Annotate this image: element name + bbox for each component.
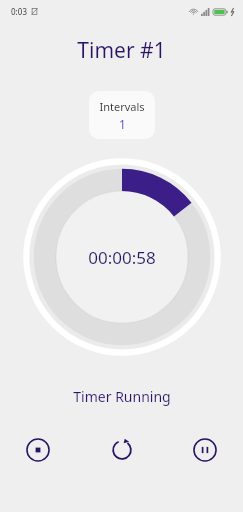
staticText: Timer #1 — [77, 36, 166, 65]
button[interactable]: Reset — [102, 430, 142, 470]
button[interactable]: Stop — [18, 430, 58, 470]
staticText: 1 — [119, 116, 126, 132]
button[interactable]: Intervals — [89, 91, 155, 139]
staticText: 00:00:58 — [88, 246, 156, 269]
staticText: Timer Running — [73, 387, 171, 406]
button[interactable]: Pause — [185, 430, 225, 470]
staticText: Intervals — [99, 99, 145, 114]
staticText: 0:03 — [11, 6, 27, 17]
